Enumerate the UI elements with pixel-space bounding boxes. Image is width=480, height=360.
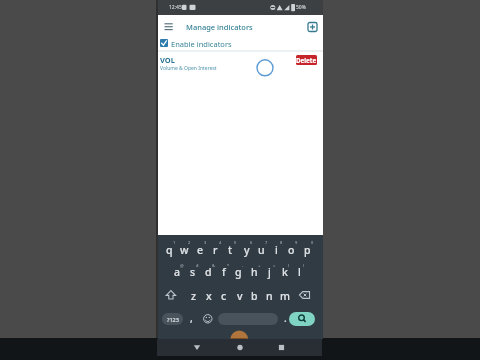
staticText: #: [196, 263, 199, 268]
button[interactable]: w: [177, 242, 192, 257]
button[interactable]: o: [284, 242, 299, 257]
button[interactable]: n: [262, 288, 277, 303]
staticText: 4: [219, 240, 222, 245]
staticText: p: [304, 243, 311, 257]
staticText: 1: [173, 240, 176, 245]
button[interactable]: u: [254, 242, 269, 257]
button[interactable]: h: [247, 264, 262, 279]
staticText: 50%: [296, 4, 306, 11]
staticText: ?123: [167, 316, 179, 323]
button[interactable]: p: [300, 242, 315, 257]
button[interactable]: e: [193, 242, 208, 257]
staticText: g: [235, 265, 242, 279]
staticText: Delete: [296, 56, 317, 64]
button[interactable]: [269, 339, 293, 356]
staticText: c: [221, 289, 227, 303]
button[interactable]: c: [216, 288, 231, 303]
button[interactable]: [218, 313, 278, 325]
button[interactable]: d: [201, 264, 216, 279]
staticText: w: [180, 243, 189, 257]
button[interactable]: [228, 339, 252, 356]
button[interactable]: [158, 38, 278, 49]
button[interactable]: l: [292, 264, 307, 279]
staticText: Manage indicators: [186, 22, 253, 32]
button[interactable]: a: [170, 264, 185, 279]
staticText: z: [191, 289, 197, 303]
staticText: =: [273, 263, 276, 268]
staticText: *: [227, 263, 230, 268]
staticText: (: [288, 263, 290, 268]
staticText: l: [298, 265, 301, 279]
staticText: b: [251, 289, 258, 303]
staticText: 7: [265, 240, 268, 245]
button[interactable]: b: [247, 288, 262, 303]
button[interactable]: [202, 312, 214, 325]
button[interactable]: q: [162, 242, 177, 257]
button[interactable]: i: [269, 242, 284, 257]
staticText: d: [205, 265, 212, 279]
staticText: h: [251, 265, 258, 279]
staticText: Enable indicators: [171, 39, 232, 49]
staticText: t: [228, 243, 233, 257]
button[interactable]: v: [232, 288, 247, 303]
button[interactable]: .: [281, 311, 289, 325]
button[interactable]: y: [239, 242, 254, 257]
staticText: 8: [280, 240, 283, 245]
staticText: j: [268, 265, 271, 279]
staticText: r: [213, 243, 218, 257]
staticText: .: [284, 311, 287, 325]
staticText: 9: [295, 240, 298, 245]
staticText: k: [282, 265, 288, 279]
staticText: 5: [234, 240, 237, 245]
staticText: ,: [190, 311, 193, 325]
staticText: @: [180, 263, 184, 268]
button[interactable]: [163, 288, 179, 302]
staticText: y: [244, 243, 250, 257]
staticText: i: [275, 243, 278, 257]
staticText: +: [258, 263, 261, 268]
staticText: 0: [311, 240, 314, 245]
staticText: n: [266, 289, 273, 303]
button[interactable]: r: [208, 242, 223, 257]
staticText: 3: [204, 240, 207, 245]
staticText: e: [197, 243, 204, 257]
button[interactable]: k: [277, 264, 292, 279]
button[interactable]: g: [231, 264, 246, 279]
staticText: v: [237, 289, 243, 303]
staticText: 2: [188, 240, 191, 245]
staticText: q: [166, 243, 173, 257]
staticText: f: [222, 265, 226, 279]
staticText: 6: [250, 240, 253, 245]
staticText: VOL: [160, 55, 175, 64]
staticText: o: [288, 243, 295, 257]
button[interactable]: m: [277, 288, 292, 303]
button[interactable]: f: [216, 264, 231, 279]
staticText: a: [174, 265, 181, 279]
button[interactable]: ?123: [162, 313, 183, 325]
staticText: -: [242, 263, 244, 268]
staticText: u: [258, 243, 265, 257]
button[interactable]: t: [223, 242, 238, 257]
button[interactable]: z: [186, 288, 201, 303]
button[interactable]: s: [185, 264, 200, 279]
button[interactable]: [304, 20, 318, 34]
staticText: 12:45: [169, 4, 182, 11]
button[interactable]: ,: [187, 311, 195, 325]
button[interactable]: [297, 288, 313, 302]
staticText: s: [190, 265, 196, 279]
button[interactable]: [185, 339, 209, 356]
staticText: Volume & Open Interest: [160, 65, 217, 72]
button[interactable]: [289, 312, 315, 326]
staticText: &: [212, 263, 215, 268]
button[interactable]: j: [262, 264, 277, 279]
button[interactable]: [160, 19, 176, 35]
staticText: x: [206, 289, 212, 303]
button[interactable]: [158, 52, 323, 78]
button[interactable]: Delete: [296, 55, 317, 65]
staticText: ): [303, 263, 305, 268]
button[interactable]: x: [201, 288, 216, 303]
staticText: m: [280, 289, 290, 303]
